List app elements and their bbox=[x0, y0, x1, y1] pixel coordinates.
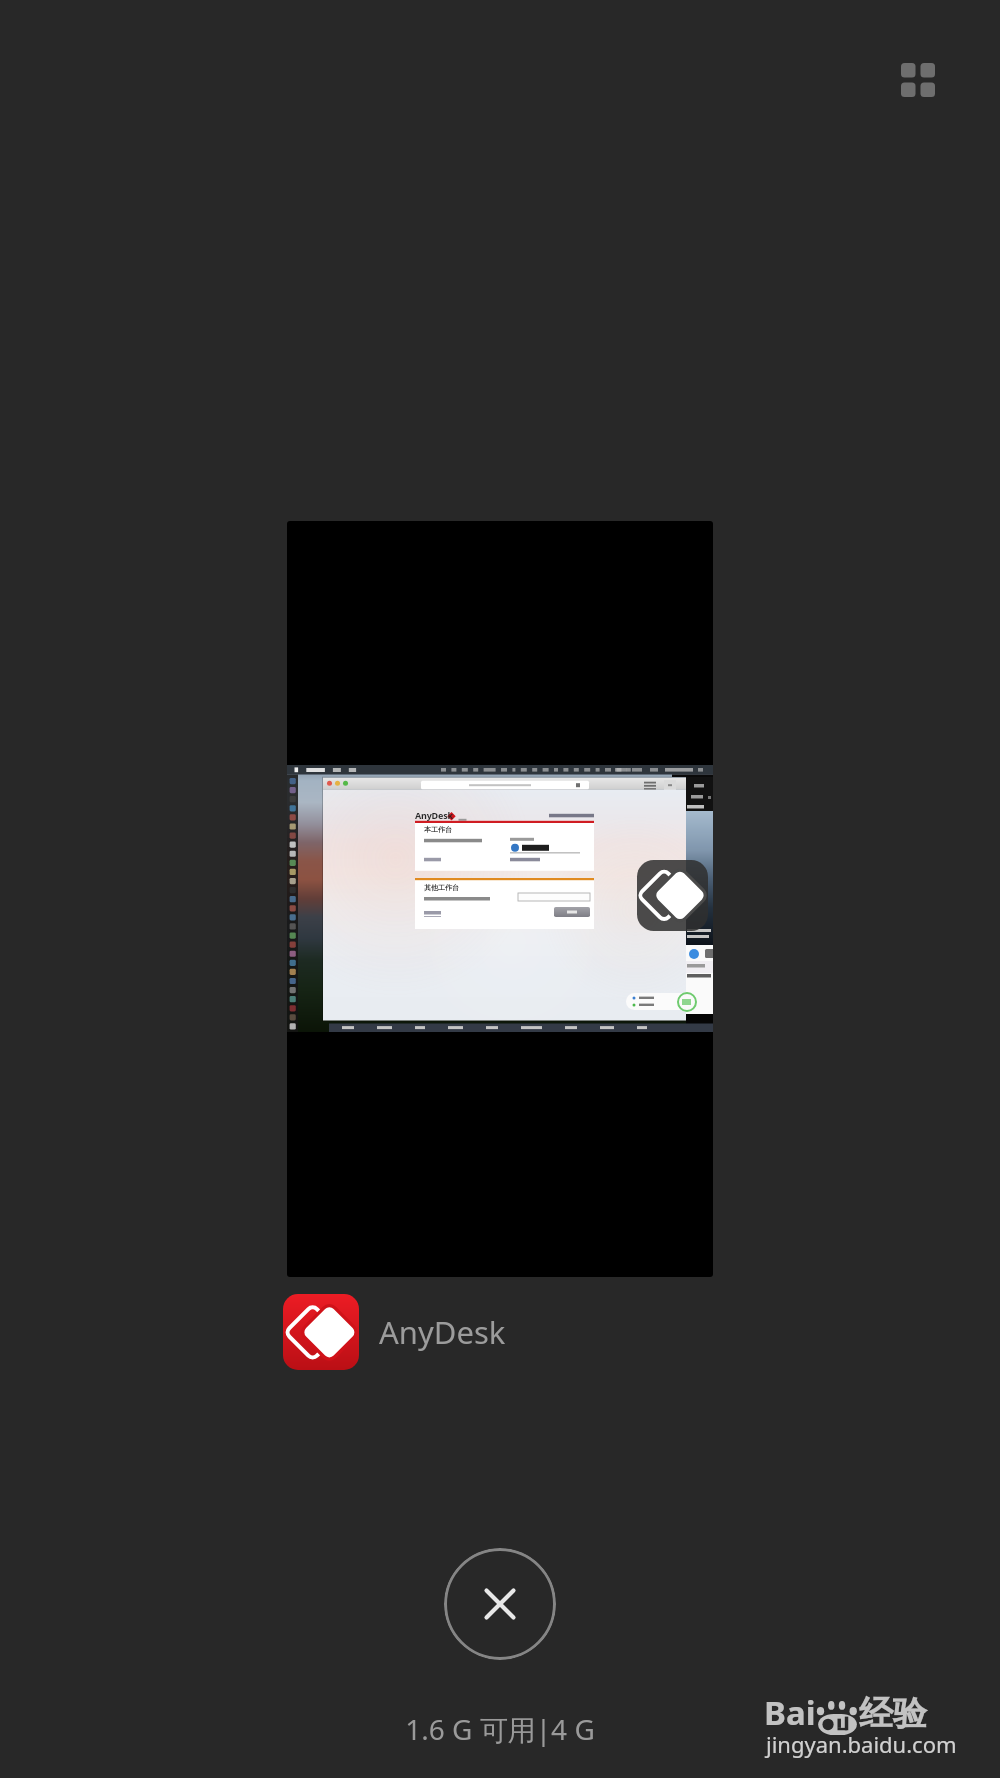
button[interactable]: All apps bbox=[878, 40, 958, 120]
staticText: 其他工作台 bbox=[424, 883, 459, 892]
staticText: AnyDesk bbox=[415, 809, 453, 821]
button[interactable]: Close all bbox=[444, 1548, 556, 1660]
button[interactable]: AnyDesk bbox=[283, 1294, 506, 1370]
staticText: 本工作台 bbox=[424, 825, 452, 834]
button[interactable]: AnyDesk recent task bbox=[287, 521, 713, 1277]
staticText: 1.6 G 可用|4 G bbox=[405, 1710, 595, 1748]
staticText: Bai bbox=[764, 1690, 816, 1735]
staticText: 经验 bbox=[859, 1692, 927, 1735]
staticText: AnyDesk bbox=[379, 1311, 506, 1353]
staticText: jingyan.baidu.com bbox=[766, 1729, 957, 1759]
